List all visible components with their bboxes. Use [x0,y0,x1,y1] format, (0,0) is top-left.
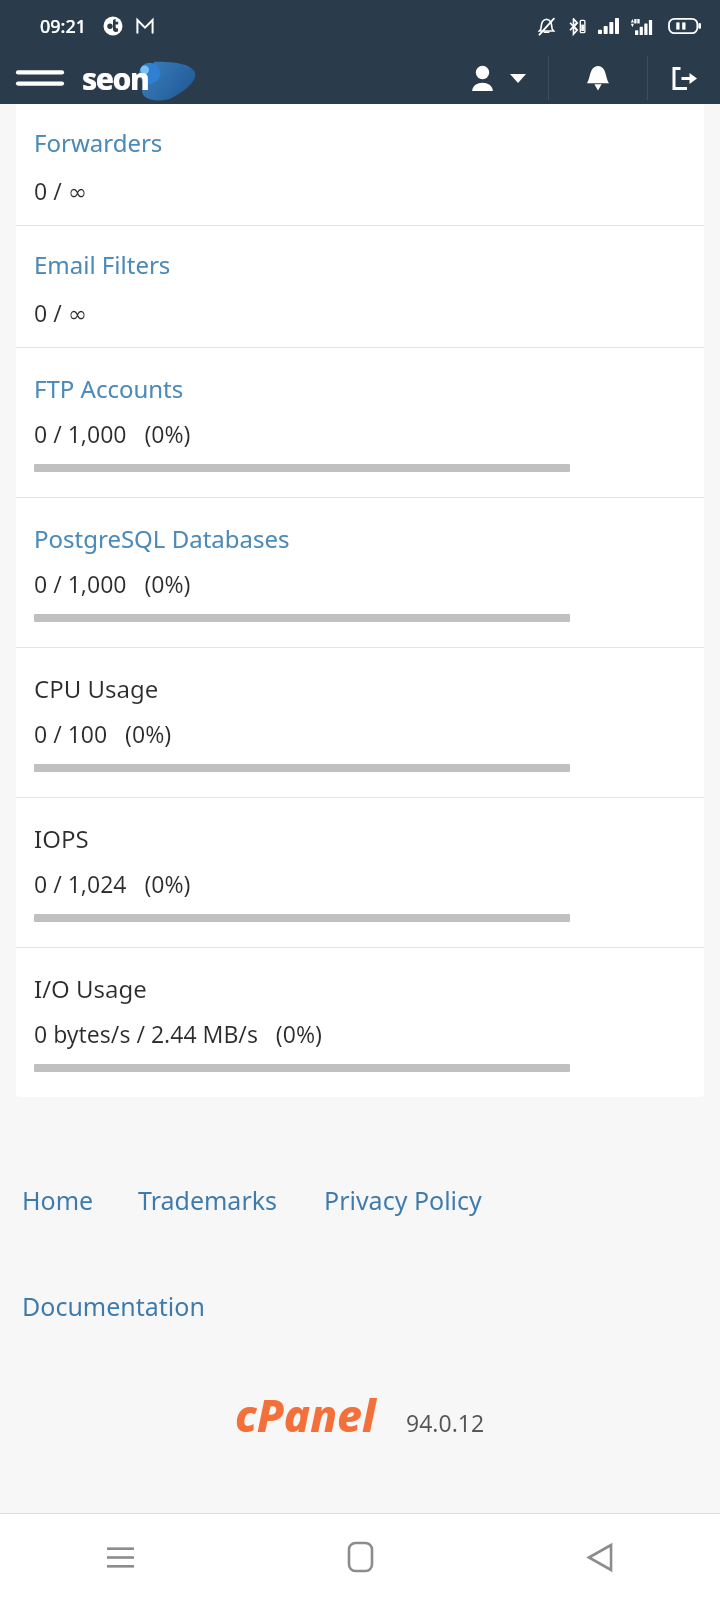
button[interactable]: PostgreSQL Databases [16,498,704,647]
staticText: 0 / ∞ [34,297,87,328]
staticText: I/O Usage [34,972,147,1005]
staticText: IOPS [34,822,89,855]
button[interactable]: Back [480,1514,720,1600]
button[interactable]: CPU Usage [16,648,704,797]
staticText: Documentation [22,1289,205,1323]
staticText: 0 / ∞ [34,175,87,206]
button[interactable]: Account menu [471,52,526,104]
staticText: cPanel [235,1385,376,1445]
button[interactable]: Home [22,1183,94,1217]
button[interactable]: Notifications [549,52,647,104]
staticText: 09:21 [40,14,87,39]
staticText: FTP Accounts [34,372,184,405]
staticText: Email Filters [34,248,171,281]
button[interactable]: Trademarks [138,1183,278,1217]
button[interactable]: Documentation [22,1289,205,1323]
button[interactable]: Recent apps [0,1514,240,1600]
staticText: seon [82,58,149,99]
staticText: 0 / 1,000 (0%) [34,568,191,599]
staticText: Home [22,1183,94,1217]
button[interactable]: seon home [80,54,208,102]
button[interactable]: Privacy Policy [324,1183,482,1217]
staticText: Trademarks [138,1183,278,1217]
staticText: Forwarders [34,126,163,159]
staticText: Privacy Policy [324,1183,482,1217]
staticText: 0 / 1,000 (0%) [34,418,191,449]
button[interactable]: FTP Accounts [16,348,704,497]
staticText: PostgreSQL Databases [34,522,290,555]
button[interactable]: I/O Usage [16,948,704,1097]
staticText: CPU Usage [34,672,159,705]
button[interactable]: Open navigation menu [0,52,80,104]
staticText: 0 bytes/s / 2.44 MB/s (0%) [34,1018,322,1049]
button[interactable]: Forwarders [16,104,704,225]
staticText: 94.0.12 [406,1407,485,1438]
button[interactable]: Home [240,1514,480,1600]
staticText: 0 / 1,024 (0%) [34,868,191,899]
button[interactable]: Email Filters [16,226,704,347]
button[interactable]: IOPS [16,798,704,947]
button[interactable]: Log out [648,52,720,104]
staticText: 0 / 100 (0%) [34,718,172,749]
